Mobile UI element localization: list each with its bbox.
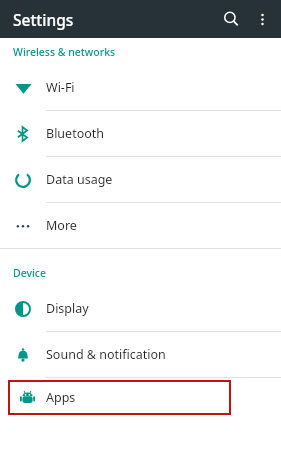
button[interactable]: Search bbox=[214, 2, 248, 36]
button[interactable]: Sound & notification bbox=[0, 332, 281, 378]
button[interactable]: Data usage bbox=[0, 157, 281, 203]
button[interactable]: Wi-Fi bbox=[0, 65, 281, 111]
button[interactable]: Display bbox=[0, 286, 281, 332]
staticText: Wi-Fi bbox=[46, 79, 75, 96]
staticText: Settings bbox=[13, 9, 74, 30]
staticText: Device bbox=[13, 266, 47, 280]
staticText: Data usage bbox=[46, 171, 113, 188]
button[interactable]: Bluetooth bbox=[0, 111, 281, 157]
staticText: Display bbox=[46, 300, 89, 317]
staticText: Wireless & networks bbox=[13, 45, 116, 59]
staticText: Sound & notification bbox=[46, 346, 166, 363]
button[interactable]: Apps bbox=[8, 380, 231, 415]
button[interactable]: More bbox=[0, 203, 281, 248]
staticText: Bluetooth bbox=[46, 125, 105, 142]
staticText: Apps bbox=[46, 389, 76, 406]
staticText: More bbox=[46, 217, 77, 234]
button[interactable]: More options bbox=[248, 5, 276, 33]
